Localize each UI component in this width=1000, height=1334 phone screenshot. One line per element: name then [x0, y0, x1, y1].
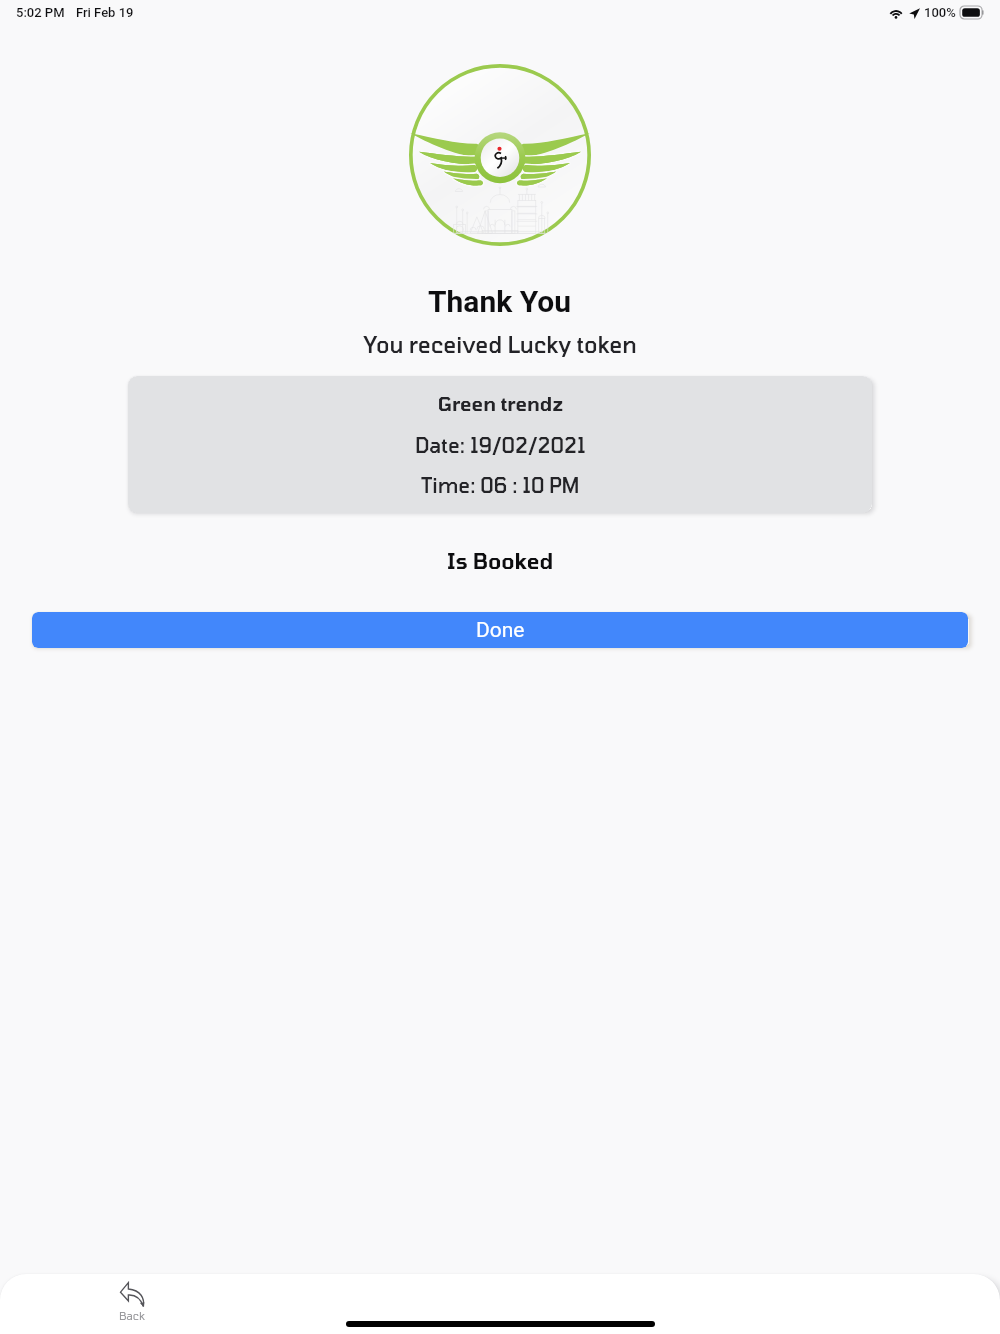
staticText: 5:02 PM [16, 5, 65, 20]
staticText: Date: 19/02/2021 [415, 433, 586, 457]
staticText: Time: 06 : 10 PM [421, 473, 580, 497]
button[interactable]: Back [110, 1278, 154, 1326]
staticText: Is Booked [447, 548, 554, 573]
staticText: You received Lucky token [363, 331, 637, 357]
button[interactable]: Done [32, 612, 968, 648]
staticText: Back [119, 1309, 145, 1322]
staticText: Done [476, 618, 525, 643]
staticText: Green trendz [438, 392, 564, 415]
staticText: Thank You [428, 284, 572, 319]
staticText: Fri Feb 19 [76, 5, 134, 20]
staticText: 100% [924, 5, 956, 20]
